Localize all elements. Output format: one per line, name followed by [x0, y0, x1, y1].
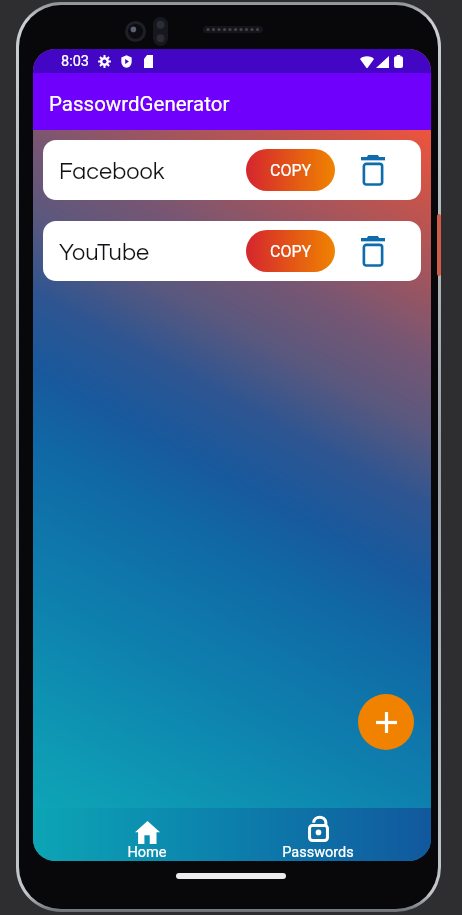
button[interactable]: Delete — [351, 226, 395, 276]
staticText: 8:03 — [61, 53, 89, 70]
button[interactable]: Add password — [358, 694, 414, 750]
staticText: Facebook — [59, 160, 165, 184]
button[interactable]: YouTube — [43, 221, 421, 281]
button[interactable]: Passwords — [268, 808, 368, 861]
button[interactable]: Facebook — [43, 140, 421, 200]
staticText: COPY — [270, 242, 312, 261]
staticText: Home — [127, 844, 167, 861]
button[interactable]: Delete — [351, 145, 395, 195]
staticText: Passwords — [282, 844, 354, 861]
staticText: YouTube — [59, 241, 149, 265]
staticText: COPY — [270, 161, 312, 180]
button[interactable]: COPY — [246, 149, 335, 191]
button[interactable]: COPY — [246, 230, 335, 272]
staticText: PassowrdGenerator — [49, 92, 230, 116]
button[interactable]: Home — [97, 808, 197, 861]
